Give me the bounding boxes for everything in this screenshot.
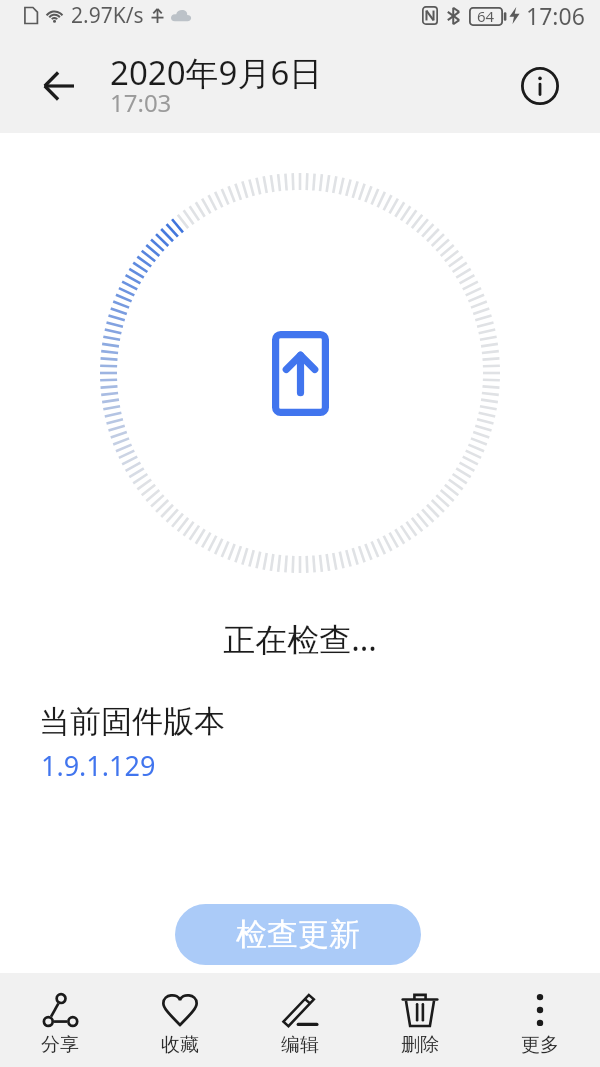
button[interactable]: 删除 bbox=[360, 984, 480, 1057]
button[interactable]: 收藏 bbox=[120, 984, 240, 1057]
button[interactable]: 编辑 bbox=[240, 984, 360, 1057]
staticText: 17:06 bbox=[526, 0, 585, 31]
staticText: 64 bbox=[477, 6, 495, 26]
staticText: 当前固件版本 bbox=[39, 702, 225, 741]
button[interactable]: Information bbox=[510, 56, 570, 116]
button[interactable]: Back bbox=[29, 56, 89, 116]
staticText: 更多 bbox=[521, 1033, 559, 1057]
button[interactable]: 更多 bbox=[480, 984, 600, 1057]
staticText: 17:03 bbox=[110, 86, 172, 119]
staticText: 正在检查... bbox=[0, 617, 600, 661]
staticText: 检查更新 bbox=[236, 915, 360, 954]
staticText: 编辑 bbox=[281, 1033, 319, 1057]
staticText: 分享 bbox=[41, 1033, 79, 1057]
staticText: 2.97K/s bbox=[71, 1, 144, 30]
staticText: 2020年9月6日 bbox=[110, 50, 323, 95]
staticText: 1.9.1.129 bbox=[41, 747, 156, 784]
button[interactable]: 分享 bbox=[0, 984, 120, 1057]
staticText: 收藏 bbox=[161, 1033, 199, 1057]
staticText: 删除 bbox=[401, 1033, 439, 1057]
button[interactable]: 检查更新 bbox=[175, 904, 421, 965]
